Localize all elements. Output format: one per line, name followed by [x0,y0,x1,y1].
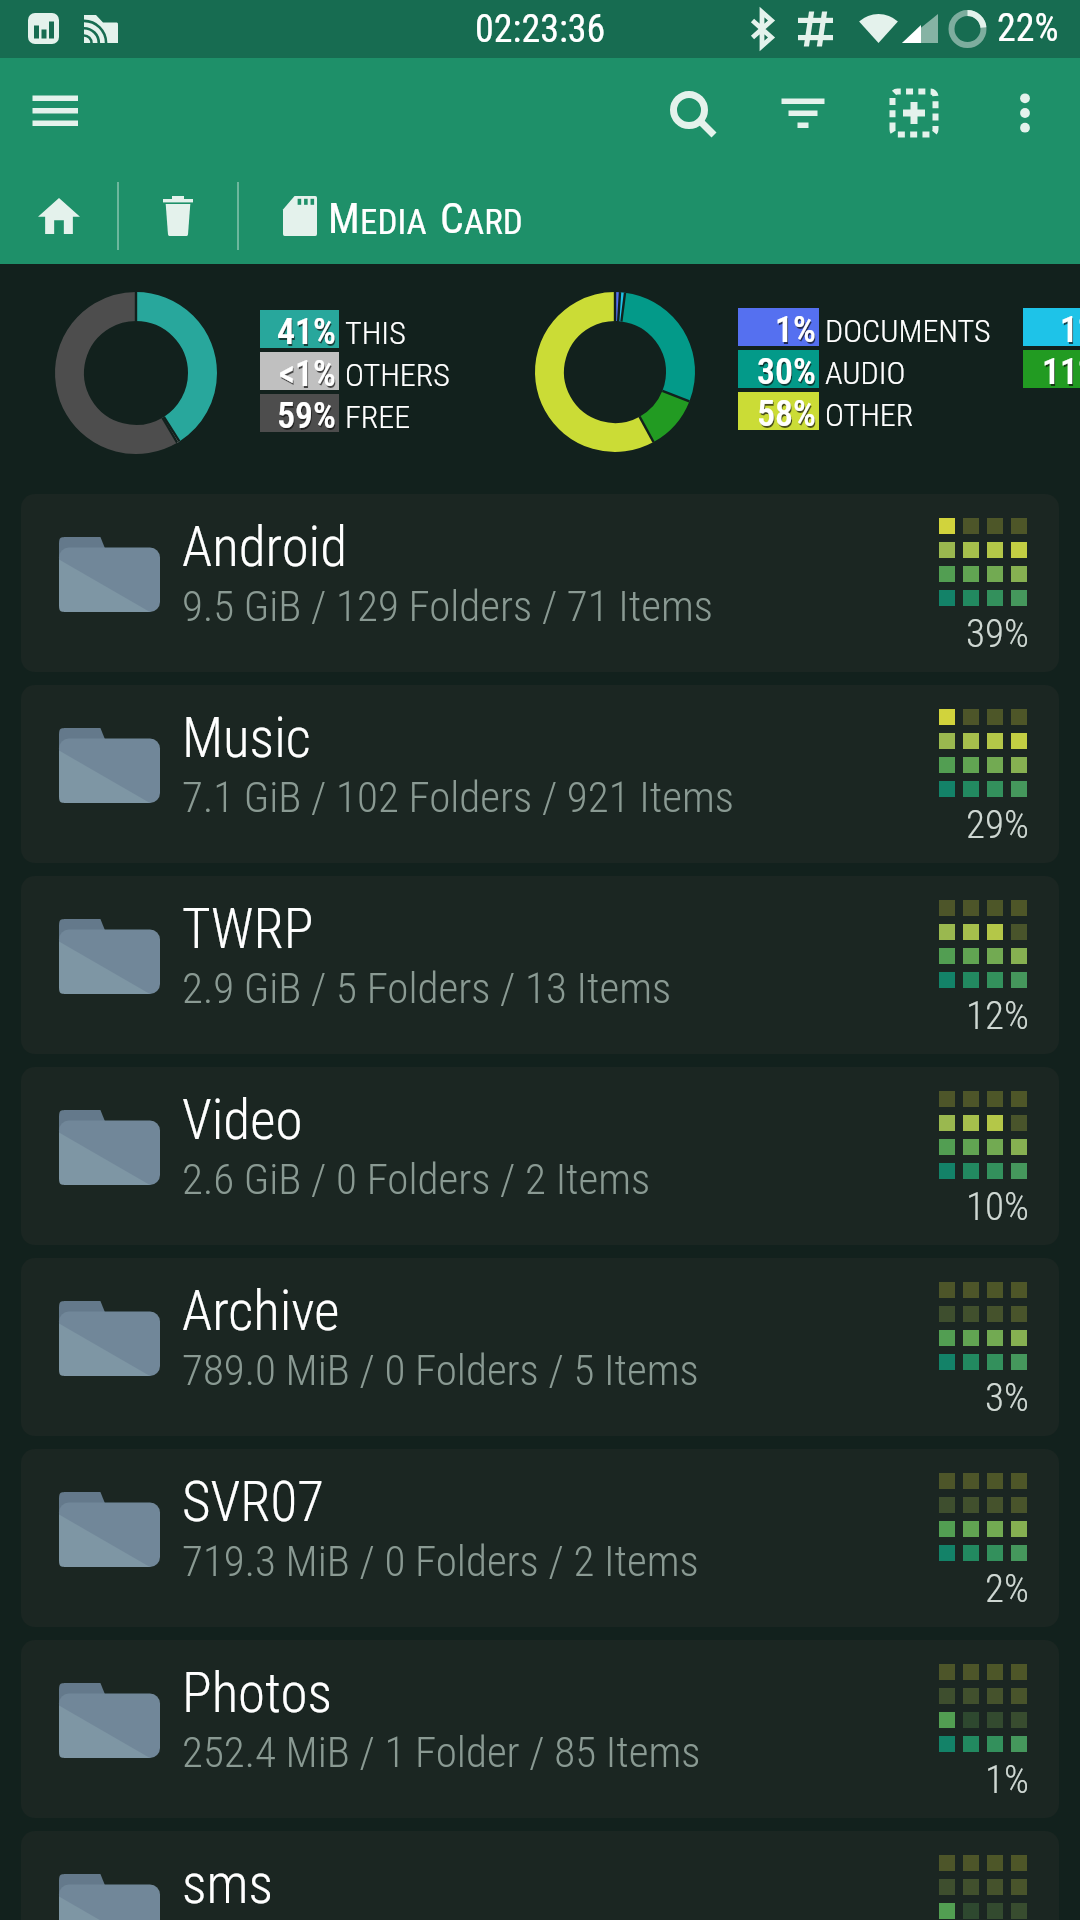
staticText: 41% [277,311,336,349]
staticText: <1% [280,355,337,393]
staticText: 22% [997,6,1059,51]
button[interactable]: Android [21,494,1059,672]
staticText: SVR07 [182,1470,324,1534]
button[interactable]: Video [21,1067,1059,1245]
button[interactable]: Select all [858,58,969,168]
staticText: 39% [966,611,1029,657]
staticText: FREE [345,398,411,436]
staticText: 2% [985,1566,1029,1612]
button[interactable]: TWRP [21,876,1059,1054]
staticText: C [440,194,464,243]
staticText: DOCUMENTS [825,312,991,350]
button[interactable]: Trash [119,168,237,264]
staticText: <1% [279,353,336,391]
staticText: 58% [757,393,816,431]
staticText: Archive [182,1279,340,1343]
staticText: 59% [278,397,337,435]
staticText: 12% [966,993,1029,1039]
button[interactable]: Music [21,685,1059,863]
staticText: 30% [757,351,816,389]
staticText: 3% [985,1375,1029,1421]
staticText: 789.0 MiB / 0 Folders / 5 Items [182,1345,699,1395]
staticText: 719.3 MiB / 0 Folders / 2 Items [182,1536,699,1586]
staticText: 1% [1061,311,1080,349]
staticText: AUDIO [825,354,906,392]
staticText: 02:23:36 [475,7,606,52]
staticText: 30% [758,353,817,391]
staticText: 29% [966,802,1029,848]
staticText: 58% [758,395,817,433]
button[interactable]: Archive [21,1258,1059,1436]
button[interactable]: Photos [21,1640,1059,1818]
staticText: OTHER [825,396,914,434]
staticText: 11% [1043,353,1080,391]
staticText: TWRP [182,897,314,961]
staticText: 10% [966,1184,1029,1230]
staticText: 59% [277,395,336,433]
staticText: 7.1 GiB / 102 Folders / 921 Items [182,772,734,822]
staticText: 41% [278,313,337,351]
staticText: THIS [345,314,406,352]
staticText: Photos [182,1661,333,1725]
staticText: sms [182,1852,274,1916]
button[interactable]: Search [636,58,747,168]
staticText: 9.5 GiB / 129 Folders / 71 Items [182,581,714,631]
staticText: 11% [1042,351,1080,389]
button[interactable]: Navigation menu [10,68,100,158]
button[interactable]: More options [969,58,1080,168]
staticText: Music [182,706,311,770]
button[interactable]: Sort [747,58,858,168]
button[interactable]: sms [21,1831,1059,1920]
staticText: M [328,194,360,243]
button[interactable]: SVR07 [21,1449,1059,1627]
staticText: OTHERS [345,356,450,394]
staticText: 1% [985,1757,1029,1803]
staticText: 1% [775,309,816,347]
staticText: ARD [464,202,523,243]
staticText: EDIA [360,202,427,243]
staticText: 2.6 GiB / 0 Folders / 2 Items [182,1154,651,1204]
staticText: 252.4 MiB / 1 Folder / 85 Items [182,1727,701,1777]
staticText: Android [182,515,348,579]
staticText: 1% [1060,309,1080,347]
button[interactable]: M [239,168,1080,264]
staticText: Video [182,1088,303,1152]
staticText: 2.9 GiB / 5 Folders / 13 Items [182,963,672,1013]
button[interactable]: Home [0,168,117,264]
staticText: 1% [776,311,817,349]
